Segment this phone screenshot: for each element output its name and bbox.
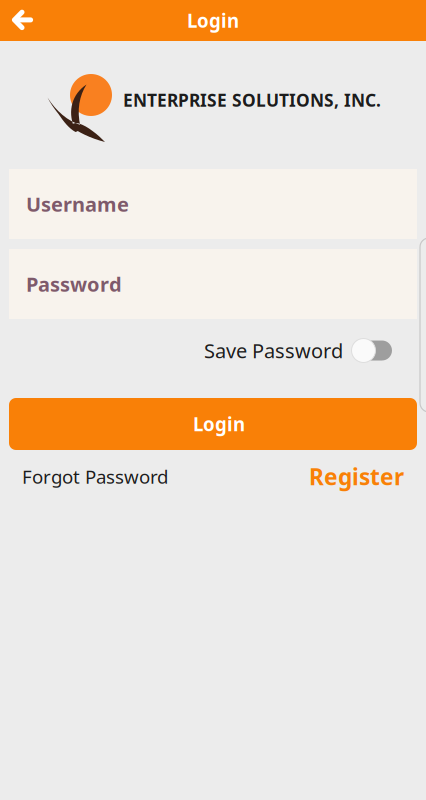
staticText: Password [26, 271, 122, 297]
staticText: Login [193, 412, 245, 436]
button[interactable]: Forgot Password [22, 464, 168, 489]
staticText: Save Password [204, 337, 343, 364]
button[interactable]: Register [309, 461, 404, 491]
staticText: Forgot Password [22, 464, 168, 489]
staticText: Login [187, 8, 239, 33]
button[interactable]: Save Password [350, 336, 392, 364]
staticText: Register [309, 461, 404, 491]
staticText: ENTERPRISE SOLUTIONS, INC. [123, 88, 381, 111]
button[interactable]: Back [0, 0, 48, 41]
staticText: Username [26, 191, 129, 217]
button[interactable]: Login [9, 398, 417, 450]
